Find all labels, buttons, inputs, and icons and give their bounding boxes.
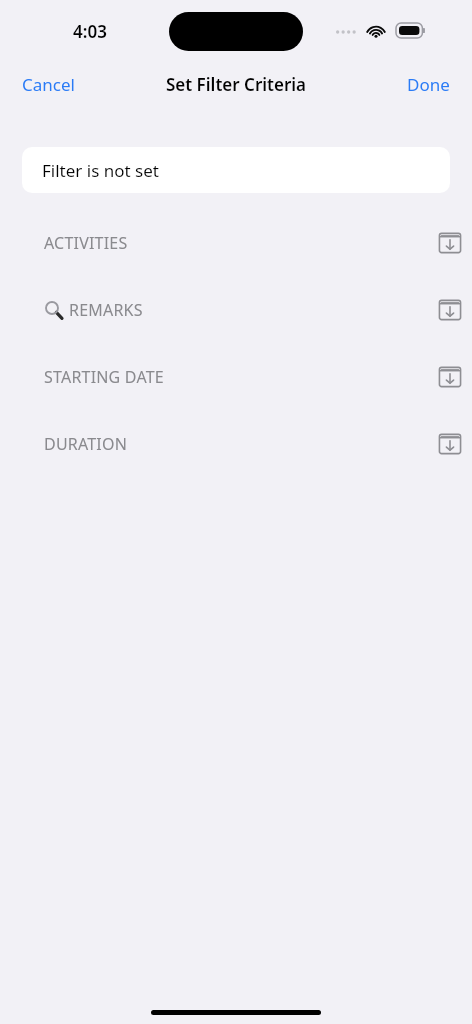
staticText: 4:03 — [61, 20, 119, 43]
button[interactable]: Done — [397, 67, 460, 102]
button[interactable]: Import STARTING DATE — [428, 355, 472, 399]
staticText: Cancel — [22, 73, 75, 96]
button[interactable]: Filter is not set — [22, 147, 450, 193]
staticText: DURATION — [44, 433, 128, 455]
staticText: ACTIVITIES — [44, 232, 128, 254]
button[interactable]: Import ACTIVITIES — [428, 221, 472, 265]
button[interactable]: Import DURATION — [428, 422, 472, 466]
button[interactable]: ACTIVITIES — [0, 221, 472, 265]
staticText: STARTING DATE — [44, 366, 164, 388]
button[interactable]: STARTING DATE — [0, 355, 472, 399]
staticText: REMARKS — [69, 299, 143, 321]
button[interactable]: Import REMARKS — [428, 288, 472, 332]
staticText: Filter is not set — [42, 159, 159, 182]
button[interactable]: REMARKS — [0, 288, 472, 332]
button[interactable]: DURATION — [0, 422, 472, 466]
staticText: Done — [407, 73, 450, 96]
staticText: Set Filter Criteria — [166, 73, 307, 96]
button[interactable]: Cancel — [12, 67, 85, 102]
